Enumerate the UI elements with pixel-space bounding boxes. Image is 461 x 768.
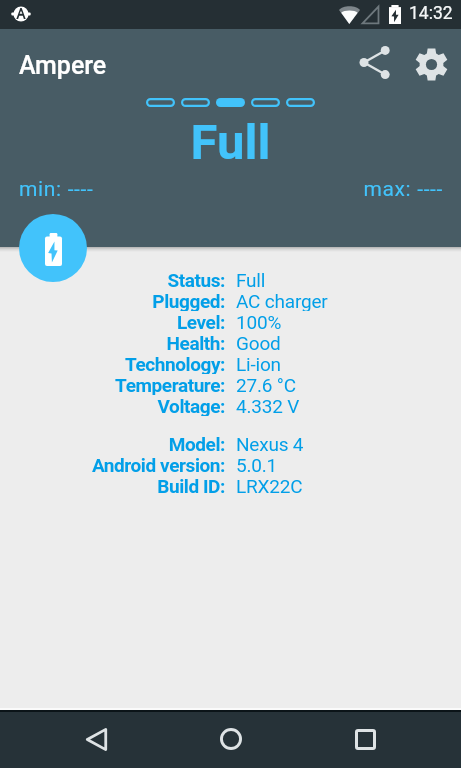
staticText: Full xyxy=(236,269,266,290)
staticText: Full xyxy=(0,114,461,171)
button[interactable]: Share xyxy=(352,40,397,85)
staticText: Status: xyxy=(0,269,225,290)
button[interactable]: Recent apps xyxy=(339,713,391,765)
staticText: 27.6 °C xyxy=(236,374,296,395)
staticText: LRX22C xyxy=(236,475,303,496)
staticText: max: ---- xyxy=(0,177,443,202)
staticText: Android version: xyxy=(0,454,225,475)
staticText: Model: xyxy=(0,433,225,454)
staticText: Good xyxy=(236,332,281,353)
staticText: Plugged: xyxy=(0,290,225,311)
staticText: Li-ion xyxy=(236,353,281,374)
staticText: Ampere xyxy=(19,51,107,80)
staticText: 100% xyxy=(236,311,282,332)
staticText: 5.0.1 xyxy=(236,454,278,475)
button[interactable]: Home xyxy=(205,713,257,765)
staticText: Voltage: xyxy=(0,395,225,416)
staticText: 14:32 xyxy=(409,3,453,24)
button[interactable]: Settings xyxy=(408,41,454,87)
staticText: 4.332 V xyxy=(236,395,300,416)
button[interactable]: Measure charging current xyxy=(19,214,87,282)
staticText: AC charger xyxy=(236,290,328,311)
button[interactable]: Back xyxy=(70,713,122,765)
staticText: min: ---- xyxy=(19,177,94,202)
staticText: Technology: xyxy=(0,353,225,374)
staticText: Nexus 4 xyxy=(236,433,304,454)
staticText: Level: xyxy=(0,311,225,332)
staticText: Temperature: xyxy=(0,374,225,395)
staticText: Health: xyxy=(0,332,225,353)
staticText: Build ID: xyxy=(0,475,225,496)
